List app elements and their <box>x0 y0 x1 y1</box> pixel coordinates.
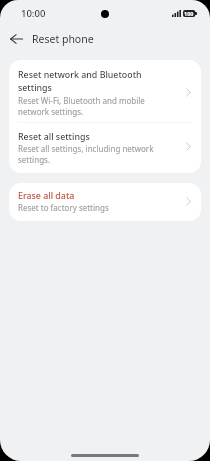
staticText: 10:00 <box>21 7 46 20</box>
staticText: Reset Wi-Fi, Bluetooth and mobile networ… <box>18 95 168 117</box>
staticText: Reset all settings, including network se… <box>18 143 168 165</box>
staticText: Reset phone <box>32 32 94 46</box>
staticText: Erase all data <box>18 189 168 202</box>
button[interactable]: Reset network and Bluetooth settings <box>9 60 201 122</box>
button[interactable]: Reset all settings <box>9 122 201 172</box>
button[interactable]: Back <box>4 28 28 50</box>
staticText: Reset network and Bluetooth settings <box>18 68 168 94</box>
staticText: 100 <box>184 10 194 17</box>
button[interactable]: Erase all data <box>9 183 201 220</box>
staticText: Reset to factory settings <box>18 202 168 213</box>
staticText: Reset all settings <box>18 130 168 143</box>
